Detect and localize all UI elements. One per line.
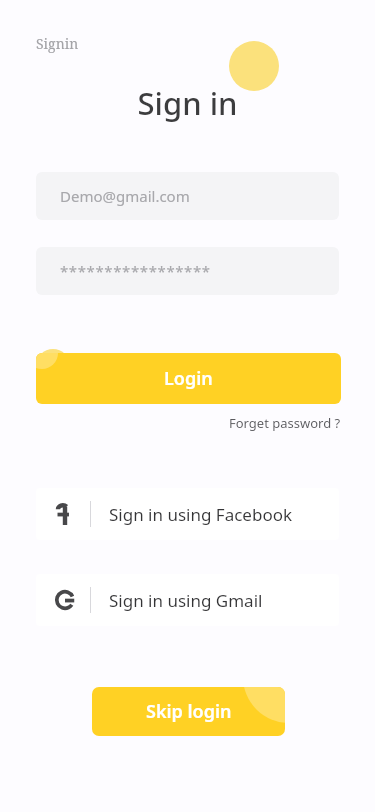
button[interactable]: Login [36, 353, 341, 404]
staticText: Skip login [146, 699, 232, 724]
staticText: ***************** [60, 261, 211, 281]
staticText: Demo@gmail.com [60, 186, 190, 206]
staticText: Sign in using Facebook [109, 503, 293, 526]
button[interactable]: Skip login [92, 687, 285, 736]
staticText: Sign in [0, 82, 375, 124]
button[interactable]: Sign in using Gmail [36, 574, 339, 626]
button[interactable]: Forget password ? [225, 412, 345, 434]
button[interactable]: Sign in using Facebook [36, 488, 339, 540]
staticText: Sign in using Gmail [109, 589, 263, 612]
staticText: Login [164, 366, 213, 391]
staticText: Forget password ? [229, 414, 341, 432]
button[interactable]: Demo@gmail.com [36, 172, 339, 220]
staticText: Signin [36, 34, 79, 53]
button[interactable]: ***************** [36, 247, 339, 295]
